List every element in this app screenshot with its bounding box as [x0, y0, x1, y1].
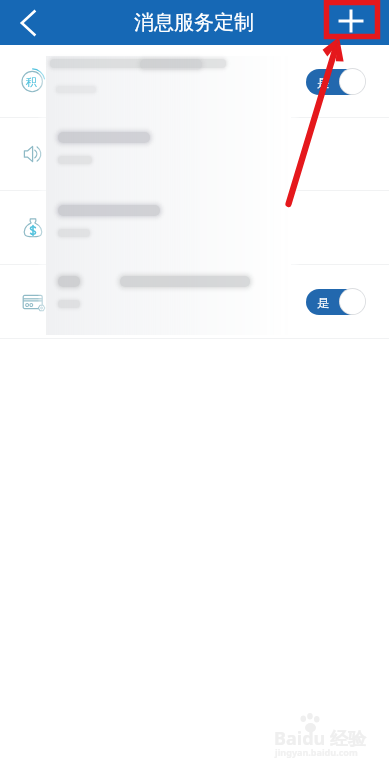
- button[interactable]: 积: [0, 45, 389, 117]
- staticText: jingyan.baidu.com: [275, 746, 358, 758]
- button[interactable]: [0, 191, 389, 264]
- staticText: Baidu 经验: [274, 726, 366, 751]
- button[interactable]: Enabled toggle: [0, 265, 389, 338]
- staticText: 积: [26, 75, 37, 89]
- button[interactable]: Enabled toggle: [306, 68, 366, 95]
- staticText: 是: [317, 75, 329, 90]
- button[interactable]: Back: [0, 0, 54, 45]
- staticText: 是: [317, 295, 329, 310]
- button[interactable]: [0, 118, 389, 190]
- button[interactable]: Add: [341, 0, 389, 45]
- staticText: 消息服务定制: [134, 10, 254, 35]
- button[interactable]: Enabled toggle: [306, 288, 366, 315]
